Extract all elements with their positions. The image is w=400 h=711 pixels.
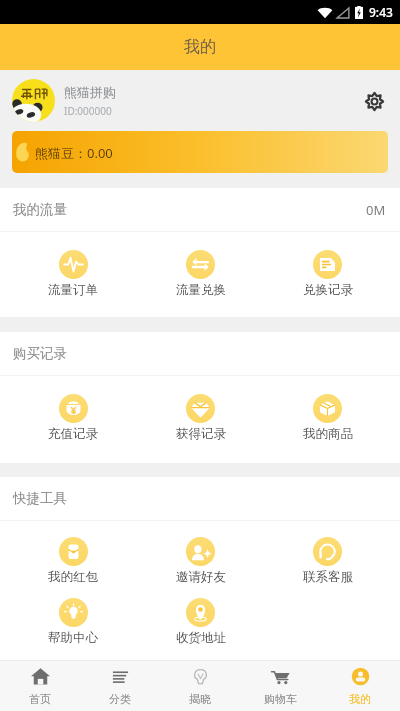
button[interactable]: 流量订单 — [9, 232, 137, 298]
button[interactable]: 获得记录 — [137, 376, 264, 442]
staticText: 兑换记录 — [303, 282, 353, 298]
button[interactable]: 流量兑换 — [137, 232, 264, 298]
staticText: 我的红包 — [48, 569, 98, 585]
staticText: 快捷工具 — [13, 490, 67, 507]
staticText: 我的流量 — [13, 201, 67, 218]
button[interactable]: 熊猫拼购 — [12, 70, 392, 131]
button[interactable]: 收货地址 — [137, 580, 264, 646]
staticText: 熊猫拼购 — [64, 84, 116, 100]
staticText: 流量订单 — [48, 282, 98, 298]
staticText: 购买记录 — [13, 345, 67, 362]
button[interactable]: 熊猫豆：0.00 — [12, 131, 388, 173]
staticText: 充值记录 — [48, 426, 98, 442]
staticText: 获得记录 — [176, 426, 226, 442]
staticText: 9:43 — [369, 4, 393, 20]
staticText: 0M — [366, 201, 386, 219]
button[interactable]: Settings — [356, 83, 392, 119]
button[interactable]: 我的红包 — [9, 519, 137, 585]
button[interactable]: 邀请好友 — [137, 519, 264, 585]
button[interactable]: 我的商品 — [264, 376, 391, 442]
button[interactable]: 充值记录 — [9, 376, 137, 442]
button[interactable]: 我的 — [320, 661, 400, 711]
staticText: 邀请好友 — [176, 569, 226, 585]
staticText: 熊猫豆：0.00 — [35, 144, 113, 162]
button[interactable]: 联系客服 — [264, 519, 391, 585]
staticText: 帮助中心 — [48, 630, 98, 646]
button[interactable]: 首页 — [0, 661, 80, 711]
staticText: 收货地址 — [176, 630, 226, 646]
staticText: 揭晓 — [189, 692, 211, 706]
button[interactable]: 分类 — [80, 661, 160, 711]
staticText: 我的商品 — [303, 426, 353, 442]
staticText: 购物车 — [264, 692, 297, 706]
staticText: 流量兑换 — [176, 282, 226, 298]
button[interactable]: 帮助中心 — [9, 580, 137, 646]
staticText: 首页 — [29, 692, 51, 706]
staticText: ID:000000 — [64, 104, 112, 118]
button[interactable]: 揭晓 — [160, 661, 240, 711]
button[interactable]: 购物车 — [240, 661, 320, 711]
staticText: 分类 — [109, 692, 131, 706]
staticText: 我的 — [184, 37, 216, 57]
button[interactable]: 兑换记录 — [264, 232, 391, 298]
staticText: 我的 — [349, 692, 371, 706]
staticText: 联系客服 — [303, 569, 353, 585]
